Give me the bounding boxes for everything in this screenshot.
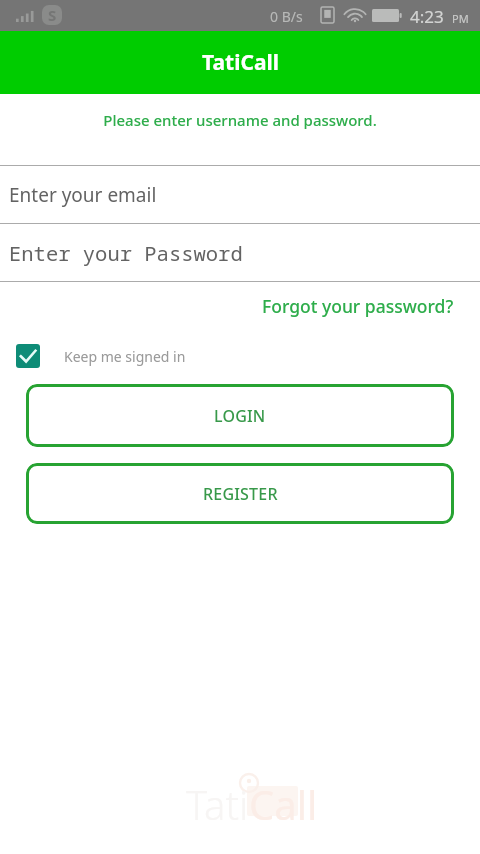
staticText: PM	[452, 11, 469, 26]
button[interactable]: LOGIN	[26, 384, 454, 447]
button[interactable]: Enter your Password	[0, 224, 480, 281]
button[interactable]: REGISTER	[26, 463, 454, 524]
staticText: 4:23	[410, 5, 444, 28]
staticText: Keep me signed in	[64, 347, 186, 366]
button[interactable]: Keep me signed in checkbox, checked	[0, 338, 202, 374]
staticText: Please enter username and password.	[0, 110, 480, 130]
staticText: 0 B/s	[270, 7, 303, 26]
staticText: LOGIN	[214, 405, 266, 427]
staticText: S	[48, 5, 57, 25]
staticText: Enter your email	[9, 182, 157, 208]
staticText: Tati	[186, 777, 249, 831]
staticText: Call	[249, 777, 318, 831]
other: Keep me signed in checkbox, checked	[16, 344, 40, 368]
staticText: Enter your Password	[9, 239, 243, 267]
button[interactable]: Forgot your password?	[250, 288, 480, 324]
button[interactable]: Enter your email	[0, 166, 480, 223]
staticText: Forgot your password?	[262, 294, 454, 318]
staticText: REGISTER	[203, 483, 278, 505]
staticText: TatiCall	[202, 48, 279, 77]
